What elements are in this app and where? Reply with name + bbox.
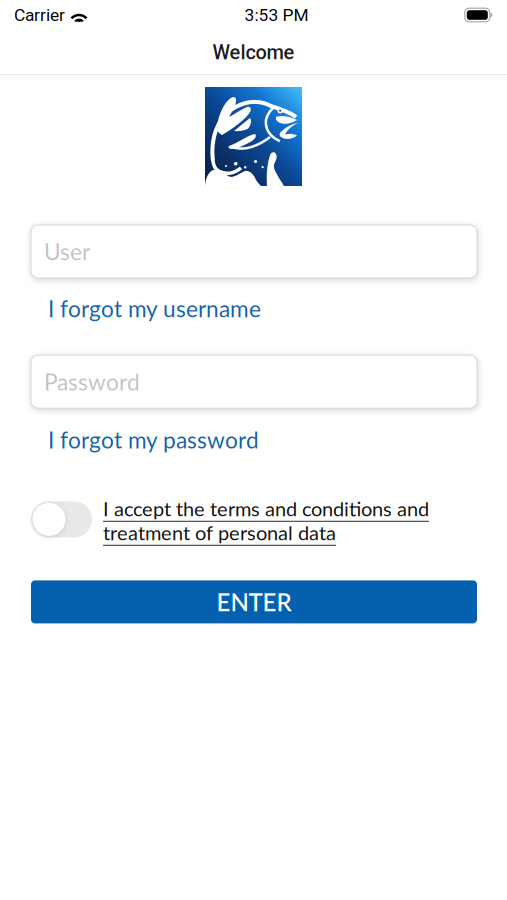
staticText: Carrier xyxy=(14,5,65,25)
button[interactable]: I forgot my password xyxy=(31,426,477,453)
staticText: Welcome xyxy=(212,41,294,64)
staticText: I forgot my password xyxy=(48,426,259,453)
staticText: ENTER xyxy=(216,587,291,616)
button[interactable]: User xyxy=(31,225,477,278)
staticText: 3:53 PM xyxy=(244,5,308,25)
button[interactable]: I accept the terms and conditions and tr… xyxy=(31,496,477,544)
button[interactable]: ENTER xyxy=(31,580,477,623)
button[interactable]: I forgot my username xyxy=(31,295,477,322)
staticText: I accept the terms and conditions and tr… xyxy=(103,496,429,544)
button[interactable]: Password xyxy=(31,355,477,408)
staticText: I forgot my username xyxy=(48,295,261,322)
staticText: Password xyxy=(44,368,140,395)
staticText: User xyxy=(44,238,90,265)
